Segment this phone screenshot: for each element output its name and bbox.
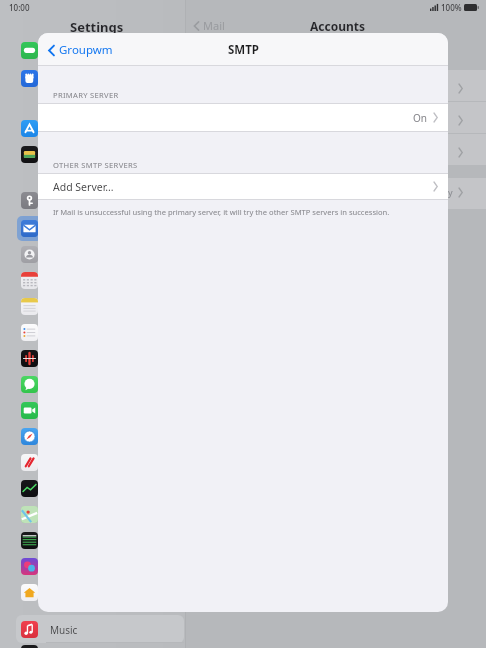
staticText: y <box>448 186 453 198</box>
staticText: PRIMARY SERVER <box>53 90 119 100</box>
staticText: SMTP <box>228 42 259 58</box>
button[interactable]: home <box>21 584 38 601</box>
button[interactable]: safari <box>21 428 38 445</box>
staticText: Accounts <box>310 18 366 34</box>
button[interactable]: mail <box>21 220 38 237</box>
button[interactable]: calendar <box>21 272 38 289</box>
button[interactable]: wallet <box>21 146 38 163</box>
staticText: Add Server… <box>53 180 114 194</box>
button[interactable]: stocks <box>21 480 38 497</box>
staticText: Groupwm <box>59 42 113 58</box>
button[interactable]: news <box>21 454 38 471</box>
staticText: On <box>413 111 427 125</box>
button[interactable]: messages <box>21 376 38 393</box>
button[interactable]: appstore <box>21 120 38 137</box>
staticText: 100% <box>441 2 462 13</box>
button[interactable]: contacts <box>21 246 38 263</box>
button[interactable]: translate <box>21 532 38 549</box>
staticText: OTHER SMTP SERVERS <box>53 160 138 170</box>
staticText: Music <box>50 623 78 637</box>
button[interactable]: maps <box>21 506 38 523</box>
button[interactable]: pill <box>21 42 38 59</box>
button[interactable]: Music <box>16 615 184 643</box>
button[interactable]: Add Server… <box>38 174 448 199</box>
staticText: If Mail is unsuccessful using the primar… <box>53 207 390 217</box>
button[interactable]: Groupwm <box>46 38 115 62</box>
button[interactable]: facetime <box>21 402 38 419</box>
button[interactable]: On <box>38 104 448 131</box>
staticText: Settings <box>70 18 124 36</box>
button[interactable]: notes <box>21 298 38 315</box>
button[interactable]: Mail <box>21 220 38 237</box>
button[interactable]: hand <box>21 70 38 87</box>
button[interactable]: shortcuts <box>21 558 38 575</box>
button[interactable]: voice <box>21 350 38 367</box>
staticText: 10:00 <box>9 2 30 13</box>
button[interactable]: reminders <box>21 324 38 341</box>
staticText: Mail <box>203 18 225 33</box>
button[interactable]: key <box>21 192 38 209</box>
